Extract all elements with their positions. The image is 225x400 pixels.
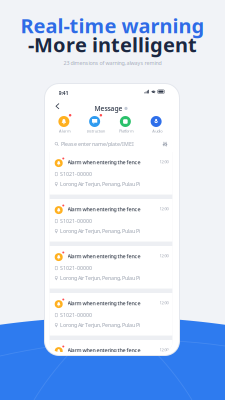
staticText: Lorong Air Terjun, Penang, Pulau Pi — [60, 274, 140, 282]
button[interactable]: Alarm when entering the fence — [49, 152, 172, 194]
button[interactable]: Alarm when entering the fence — [49, 199, 172, 241]
staticText: Lorong Air Terjun, Penang, Pulau Pi — [60, 227, 140, 235]
staticText: S1021-00000 — [60, 170, 92, 178]
staticText: S1021-00000 — [60, 264, 92, 272]
staticText: Platform — [119, 128, 134, 134]
staticText: S1021-00000 — [60, 311, 92, 319]
button[interactable]: Audio — [142, 114, 173, 134]
staticText: 9:41 — [58, 89, 68, 97]
staticText: 12:00 — [159, 206, 168, 211]
button[interactable]: Alarm — [49, 114, 80, 134]
staticText: 12:00 — [159, 347, 168, 352]
staticText: 12:00 — [159, 159, 168, 164]
staticText: Real-time warning — [20, 12, 204, 39]
button[interactable]: Instruction — [80, 114, 111, 134]
staticText: -More intelligent — [28, 31, 197, 58]
staticText: Lorong Air Terjun, Penang, Pulau Pi — [60, 180, 140, 188]
staticText: 23 dimensions of warning, always remind — [63, 59, 161, 67]
staticText: Please enter name/plate/IMEI — [61, 140, 134, 148]
button[interactable]: Back — [52, 100, 62, 112]
staticText: Alarm when entering the fence — [67, 253, 140, 260]
staticText: Instruction — [87, 128, 105, 134]
staticText: Lorong Air Terjun, Penang, Pulau Pi — [60, 321, 140, 329]
staticText: Alarm when entering the fence — [67, 206, 140, 213]
button[interactable]: Alarm when entering the fence — [49, 293, 172, 335]
staticText: Audio — [152, 128, 162, 134]
staticText: 12:00 — [159, 300, 168, 305]
staticText: Alarm when entering the fence — [67, 347, 140, 354]
staticText: Alarm — [59, 128, 71, 134]
button[interactable]: Message — [94, 102, 128, 115]
button[interactable]: Alarm when entering the fence — [49, 246, 172, 288]
staticText: 12:00 — [159, 253, 168, 258]
staticText: Alarm when entering the fence — [67, 300, 140, 307]
button[interactable]: Platform — [111, 114, 142, 134]
button[interactable]: Alarm when entering the fence — [49, 340, 172, 382]
staticText: Alarm when entering the fence — [67, 159, 140, 166]
staticText: S1021-00000 — [60, 217, 92, 225]
staticText: Message — [94, 104, 122, 113]
